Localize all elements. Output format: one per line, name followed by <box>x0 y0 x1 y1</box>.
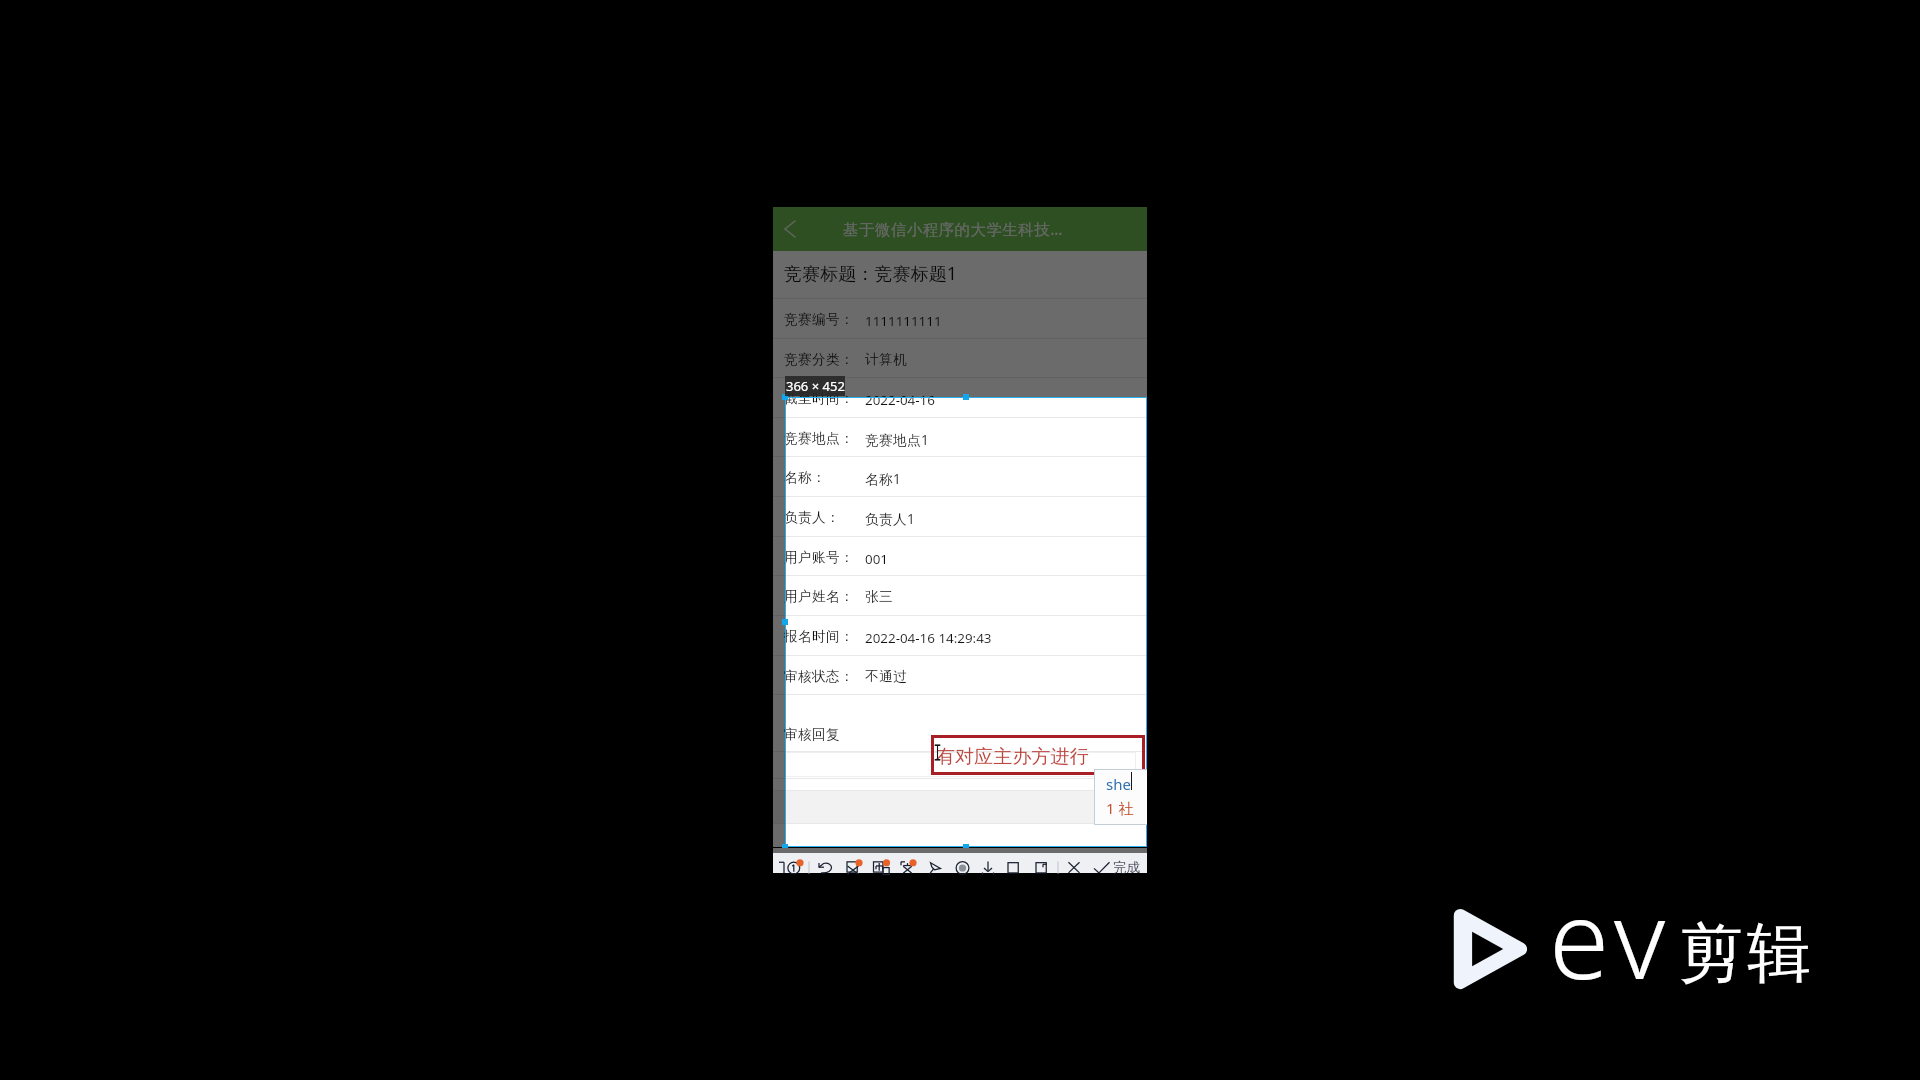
staticText: 完成 <box>1113 859 1140 876</box>
staticText: 1111111111 <box>865 312 942 330</box>
button[interactable]: 截至时间： <box>773 378 1147 418</box>
staticText: 竞赛分类： <box>784 351 855 368</box>
staticText: 竞赛标题：竞赛标题1 <box>784 261 958 285</box>
staticText: 审核回复 <box>784 726 841 743</box>
button[interactable]: 用户账号： <box>773 537 1147 577</box>
staticText: she <box>1106 774 1131 794</box>
staticText: 计算机 <box>865 351 908 368</box>
staticText: 负责人1 <box>865 509 916 528</box>
button[interactable]: 审核回复 input <box>784 752 1136 777</box>
button[interactable]: 审核状态： <box>773 656 1147 696</box>
button[interactable]: Screenshot tools <box>773 853 1147 873</box>
staticText: 366 × 452 <box>786 377 845 395</box>
staticText: ev <box>1549 862 1673 1010</box>
button[interactable]: 竞赛标题：竞赛标题1 <box>773 252 1147 299</box>
staticText: 竞赛地点： <box>784 430 855 447</box>
staticText: 名称： <box>784 469 827 486</box>
staticText: 不通过 <box>865 668 908 685</box>
staticText: 竞赛编号： <box>784 311 855 328</box>
staticText: 报名时间： <box>784 628 855 645</box>
staticText: 用户账号： <box>784 549 855 566</box>
staticText: 用户姓名： <box>784 588 855 605</box>
staticText: 1 社 <box>1106 798 1134 818</box>
staticText: 名称1 <box>865 469 902 488</box>
staticText: 截至时间： <box>784 390 855 407</box>
staticText: 2022-04-16 <box>865 391 935 409</box>
button[interactable]: 完成 <box>1113 859 1140 876</box>
button[interactable]: 审核回复 <box>773 695 1147 752</box>
staticText: 基于微信小程序的大学生科技… <box>843 219 1063 240</box>
button[interactable]: 用户姓名： <box>773 576 1147 616</box>
staticText: 张三 <box>865 588 894 605</box>
staticText: 剪辑 <box>1677 913 1813 994</box>
staticText: 2022-04-16 14:29:43 <box>865 629 992 647</box>
staticText: 负责人： <box>784 509 841 526</box>
button[interactable]: 负责人： <box>773 497 1147 537</box>
button[interactable]: 竞赛编号： <box>773 299 1147 339</box>
button[interactable]: 竞赛地点： <box>773 418 1147 458</box>
staticText: 001 <box>865 550 888 568</box>
staticText: 审核状态： <box>784 668 855 685</box>
staticText: 竞赛地点1 <box>865 430 930 449</box>
button[interactable]: 报名时间： <box>773 616 1147 656</box>
button[interactable]: 竞赛分类： <box>773 339 1147 379</box>
button[interactable]: Back <box>773 207 807 251</box>
button[interactable]: 名称： <box>773 457 1147 497</box>
staticText: 有对应主办方进行 <box>936 745 1089 767</box>
